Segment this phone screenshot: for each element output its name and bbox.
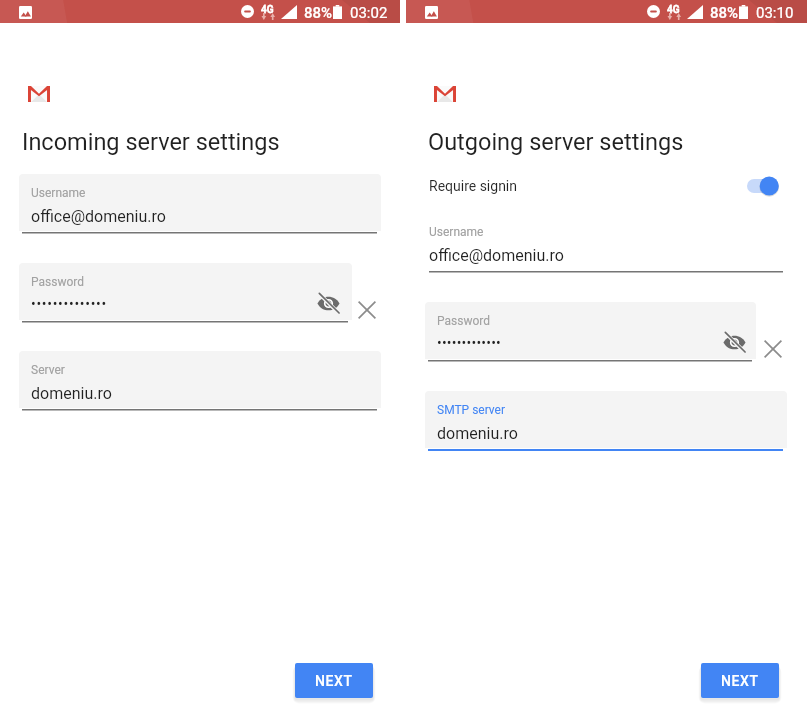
staticText: Username	[429, 225, 484, 239]
staticText: 4G	[261, 4, 274, 16]
staticText: domeniu.ro	[31, 384, 112, 403]
button[interactable]: NEXT	[295, 663, 373, 698]
button[interactable]: Require signin	[406, 172, 807, 202]
staticText: Require signin	[429, 178, 517, 194]
staticText: 4G	[667, 4, 680, 16]
button[interactable]: Show password	[723, 333, 746, 352]
staticText: SMTP server	[437, 403, 506, 417]
staticText: Incoming server settings	[22, 128, 280, 156]
staticText: ••••••••••••••	[31, 296, 107, 312]
button[interactable]: Username	[19, 174, 381, 231]
button[interactable]: Clear	[759, 335, 787, 363]
staticText: office@domeniu.ro	[31, 207, 166, 226]
staticText: 88%	[304, 4, 333, 22]
staticText: domeniu.ro	[437, 424, 518, 443]
button[interactable]: Password	[425, 302, 756, 359]
staticText: Password	[437, 314, 491, 328]
button[interactable]: Clear	[353, 296, 381, 324]
button[interactable]: Show password	[317, 294, 340, 313]
staticText: office@domeniu.ro	[429, 246, 564, 265]
staticText: 03:10	[756, 4, 794, 22]
staticText: •••••••••••••	[437, 335, 502, 351]
staticText: 03:02	[350, 4, 388, 22]
staticText: Server	[31, 363, 65, 377]
button[interactable]: Server	[19, 351, 381, 408]
staticText: 88%	[710, 4, 739, 22]
button[interactable]: SMTP server	[425, 391, 787, 448]
staticText: Password	[31, 275, 85, 289]
staticText: NEXT	[721, 673, 759, 689]
staticText: NEXT	[315, 673, 353, 689]
staticText: Username	[31, 186, 86, 200]
button[interactable]: NEXT	[701, 663, 779, 698]
button[interactable]: Password	[19, 263, 352, 320]
button[interactable]: Username	[429, 213, 783, 270]
staticText: Outgoing server settings	[428, 128, 684, 156]
